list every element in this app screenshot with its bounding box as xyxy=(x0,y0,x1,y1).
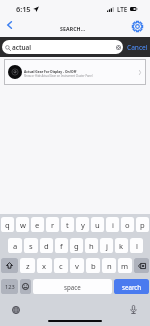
button[interactable]: w xyxy=(16,217,29,232)
button[interactable]: h xyxy=(85,238,98,253)
staticText: w xyxy=(20,220,26,230)
staticText: space xyxy=(64,283,81,291)
staticText: Actual Gear For Display - On/Off xyxy=(24,69,77,73)
staticText: v xyxy=(75,261,79,271)
button[interactable]: j xyxy=(100,238,113,253)
button[interactable]: n xyxy=(102,258,116,273)
button[interactable]: g xyxy=(70,238,83,253)
staticText: y xyxy=(81,220,85,230)
button[interactable]: z xyxy=(20,258,35,273)
staticText: o xyxy=(125,220,130,230)
staticText: p xyxy=(140,220,145,230)
button[interactable]: c xyxy=(54,258,68,273)
staticText: e xyxy=(35,220,40,230)
button[interactable]: l xyxy=(130,238,143,253)
button[interactable]: t xyxy=(61,217,74,232)
staticText: search xyxy=(122,283,142,291)
button[interactable]: a xyxy=(8,238,22,253)
staticText: x xyxy=(42,261,47,271)
button[interactable]: Cancel xyxy=(127,43,148,52)
staticText: g xyxy=(74,241,79,251)
button[interactable]: p xyxy=(136,217,149,232)
staticText: q xyxy=(5,220,10,230)
staticText: k xyxy=(119,241,124,251)
staticText: actual xyxy=(12,43,32,52)
button[interactable]: k xyxy=(115,238,128,253)
button[interactable]: s xyxy=(24,238,38,253)
button[interactable]: y xyxy=(76,217,89,232)
staticText: b xyxy=(91,261,96,271)
button[interactable]: Dictate xyxy=(129,305,138,314)
button[interactable]: Actual Gear For Display - On/Off xyxy=(4,59,146,85)
staticText: i xyxy=(112,220,114,230)
staticText: c xyxy=(59,261,63,271)
staticText: l xyxy=(136,241,138,251)
button[interactable]: Shift xyxy=(1,258,18,273)
staticText: t xyxy=(66,220,69,230)
staticText: 123 xyxy=(5,283,15,291)
button[interactable]: actual xyxy=(2,40,123,54)
staticText: m xyxy=(121,261,129,271)
button[interactable]: r xyxy=(46,217,59,232)
button[interactable]: x xyxy=(37,258,52,273)
staticText: z xyxy=(26,261,30,271)
button[interactable]: Back xyxy=(1,17,17,33)
button[interactable]: o xyxy=(121,217,134,232)
button[interactable]: search xyxy=(114,279,149,294)
button[interactable]: b xyxy=(86,258,100,273)
staticText: SEARCH... xyxy=(60,25,86,32)
staticText: r xyxy=(51,220,55,230)
button[interactable]: 123 xyxy=(1,279,18,294)
staticText: LTE xyxy=(117,5,128,13)
staticText: h xyxy=(89,241,94,251)
button[interactable]: d xyxy=(40,238,53,253)
button[interactable]: Settings xyxy=(131,20,144,33)
staticText: a xyxy=(13,241,18,251)
button[interactable]: Next keyboard xyxy=(11,305,20,314)
staticText: 6:15 xyxy=(16,4,31,14)
button[interactable]: v xyxy=(70,258,84,273)
button[interactable]: f xyxy=(55,238,68,253)
button[interactable]: q xyxy=(1,217,14,232)
button[interactable]: u xyxy=(91,217,104,232)
staticText: f xyxy=(60,241,63,251)
staticText: d xyxy=(44,241,49,251)
staticText: u xyxy=(95,220,100,230)
button[interactable]: Emoji xyxy=(20,279,31,294)
button[interactable]: space xyxy=(33,279,112,294)
staticText: n xyxy=(107,261,112,271)
staticText: s xyxy=(29,241,33,251)
button[interactable]: Backspace xyxy=(134,258,149,273)
staticText: j xyxy=(106,241,108,251)
button[interactable]: i xyxy=(106,217,119,232)
button[interactable]: m xyxy=(118,258,132,273)
button[interactable]: e xyxy=(31,217,44,232)
staticText: Show or Hide Actual Gear on Instrument C… xyxy=(24,74,93,78)
